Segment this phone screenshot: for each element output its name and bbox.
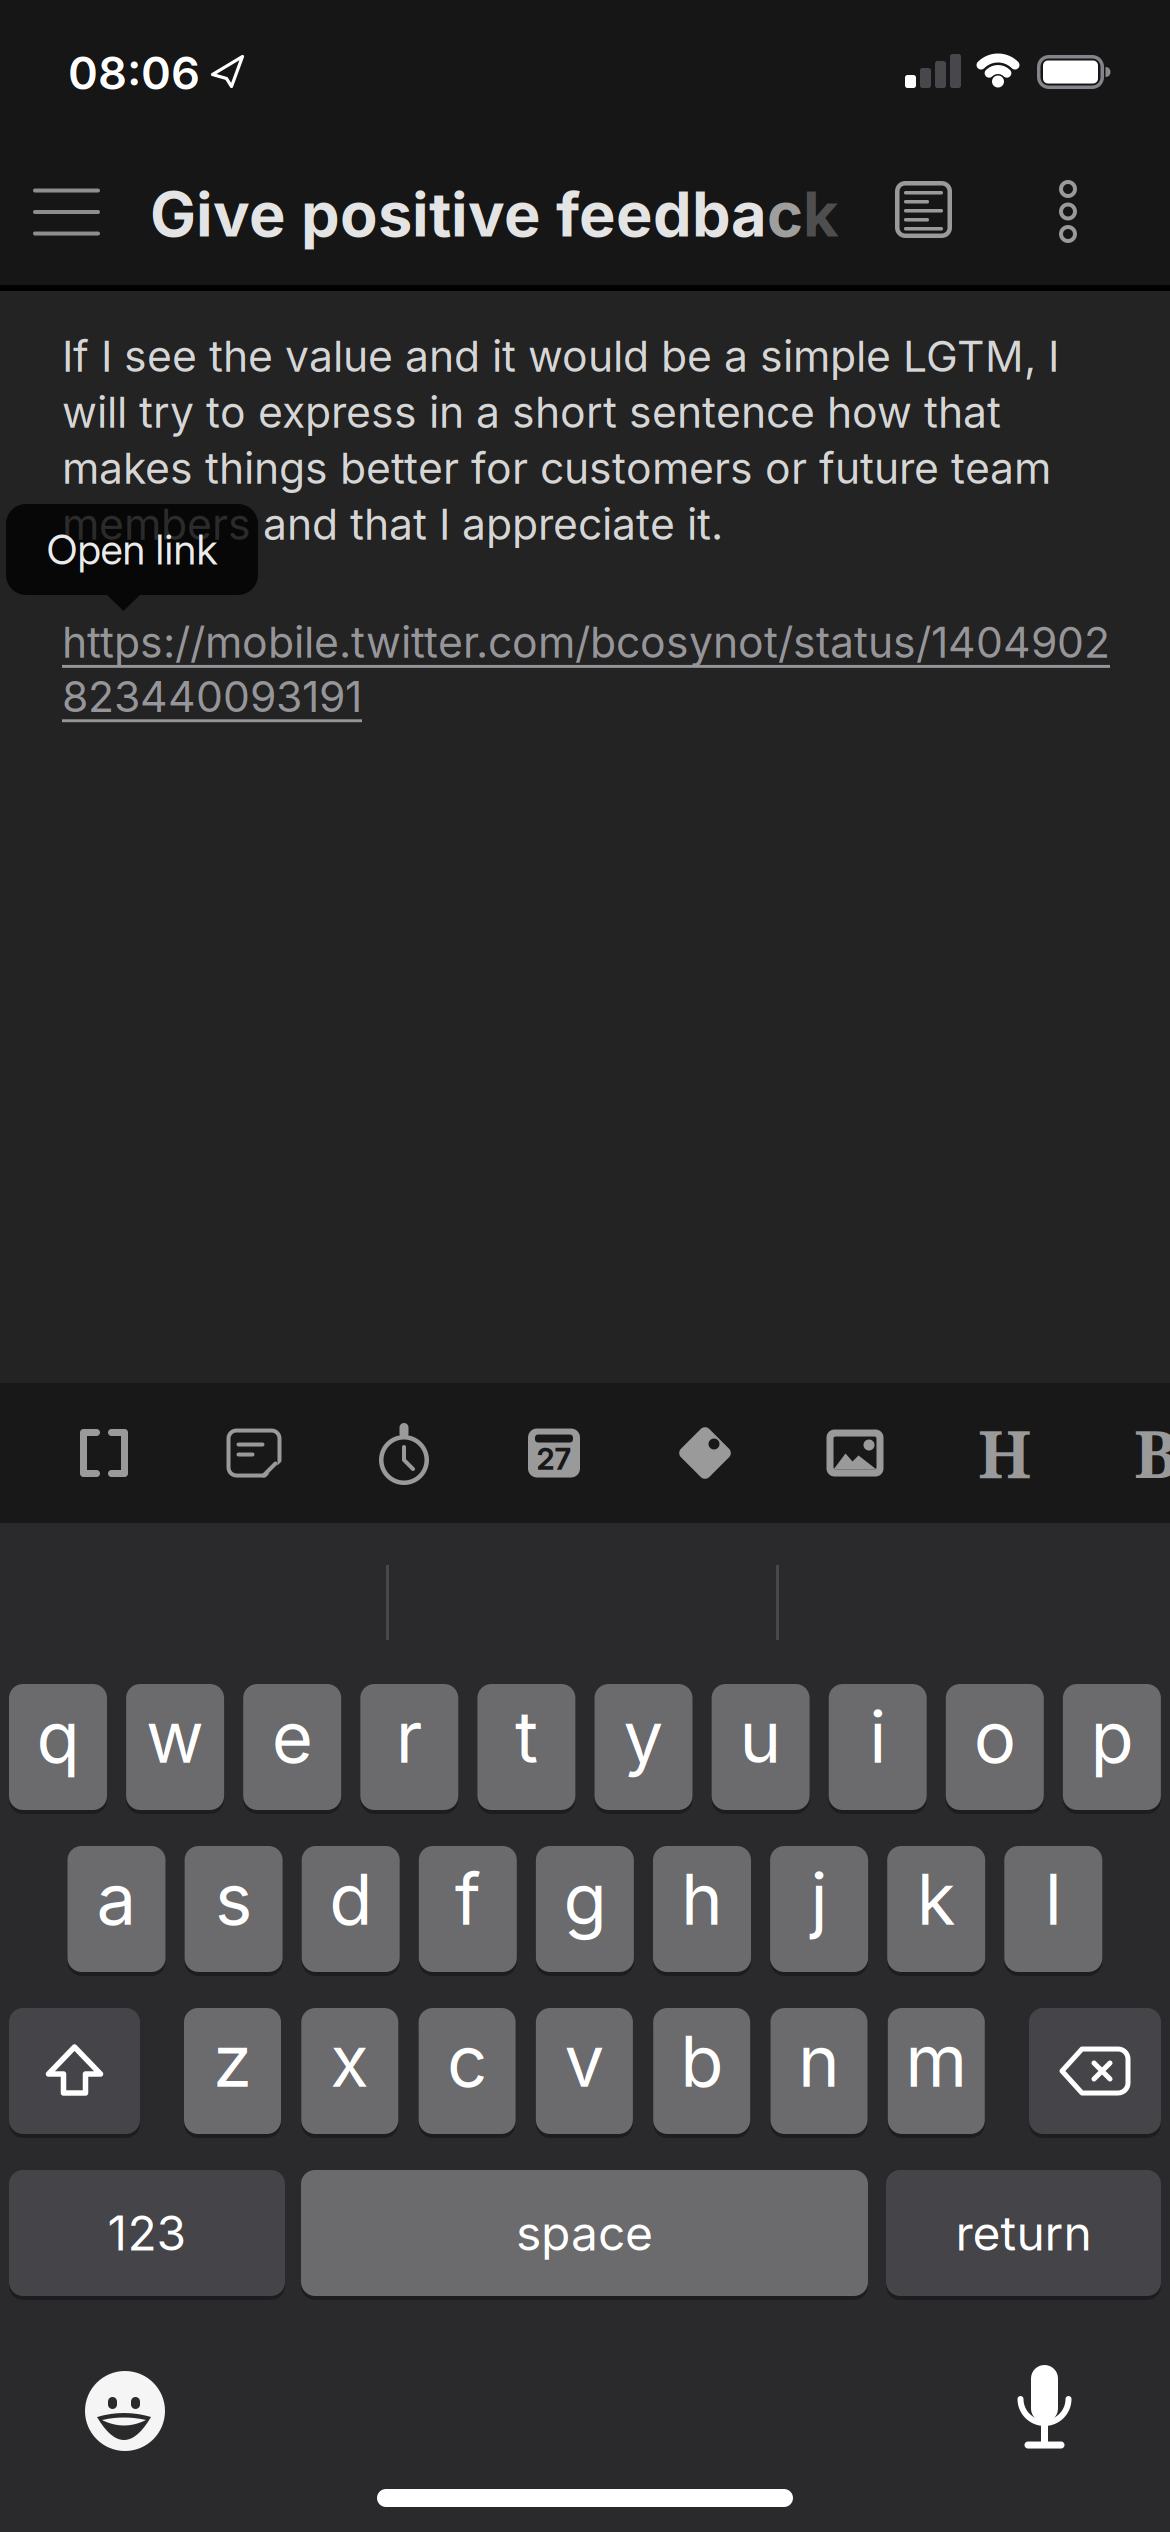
button[interactable]: s bbox=[185, 1844, 283, 1974]
staticText: i bbox=[869, 1695, 886, 1779]
button[interactable]: k bbox=[887, 1844, 985, 1974]
button[interactable]: m bbox=[888, 2006, 985, 2136]
staticText: return bbox=[955, 2205, 1091, 2261]
staticText: 123 bbox=[107, 2205, 186, 2261]
button[interactable]: Dictation bbox=[1017, 2365, 1072, 2451]
button[interactable]: g bbox=[536, 1844, 634, 1974]
staticText: e bbox=[272, 1695, 313, 1779]
button[interactable]: Insert note bbox=[226, 1428, 281, 1477]
button[interactable]: x bbox=[301, 2006, 398, 2136]
staticText: r bbox=[396, 1695, 423, 1779]
staticText: f bbox=[455, 1857, 481, 1941]
button[interactable]: v bbox=[536, 2006, 633, 2136]
staticText: s bbox=[215, 1857, 252, 1941]
staticText: y bbox=[623, 1695, 663, 1779]
staticText: If I see the value and it would be a sim… bbox=[62, 331, 1059, 381]
button[interactable]: r bbox=[360, 1682, 458, 1812]
button[interactable]: j bbox=[770, 1844, 868, 1974]
button[interactable]: a bbox=[67, 1844, 165, 1974]
button[interactable]: f bbox=[419, 1844, 517, 1974]
button[interactable]: space bbox=[301, 2168, 868, 2298]
staticText: n bbox=[798, 2019, 840, 2103]
button[interactable]: Heading bbox=[978, 1408, 1032, 1497]
staticText: q bbox=[36, 1695, 79, 1779]
staticText: space bbox=[516, 2205, 653, 2261]
staticText: h bbox=[681, 1857, 723, 1941]
staticText: k bbox=[917, 1857, 956, 1941]
staticText: k bbox=[803, 178, 839, 250]
staticText: makes things better for customers or fut… bbox=[62, 443, 1051, 493]
staticText: t bbox=[515, 1695, 538, 1779]
staticText: m bbox=[905, 2019, 967, 2103]
staticText: a bbox=[96, 1857, 136, 1941]
button[interactable]: Insert link bbox=[79, 1428, 128, 1477]
staticText: g bbox=[563, 1857, 606, 1941]
button[interactable]: Add tag bbox=[676, 1424, 734, 1482]
button[interactable]: y bbox=[594, 1682, 692, 1812]
button[interactable]: return bbox=[886, 2168, 1161, 2298]
button[interactable]: 123 bbox=[9, 2168, 285, 2298]
button[interactable]: Outline bbox=[895, 181, 952, 238]
button[interactable]: h bbox=[653, 1844, 751, 1974]
button[interactable]: b bbox=[653, 2006, 750, 2136]
staticText: 27 bbox=[536, 1442, 571, 1476]
staticText: c bbox=[767, 178, 803, 250]
staticText: 08:06 bbox=[68, 46, 200, 100]
staticText: d bbox=[329, 1857, 372, 1941]
button[interactable]: z bbox=[184, 2006, 281, 2136]
staticText: c bbox=[447, 2019, 487, 2103]
staticText: members and that I appreciate it. bbox=[62, 499, 723, 549]
staticText: j bbox=[811, 1857, 828, 1941]
button[interactable]: o bbox=[946, 1682, 1044, 1812]
button[interactable]: Insert image bbox=[826, 1429, 883, 1476]
staticText: 823440093191 bbox=[62, 671, 362, 722]
button[interactable]: Delete bbox=[1029, 2006, 1161, 2136]
staticText: H bbox=[978, 1408, 1032, 1497]
button[interactable]: d bbox=[302, 1844, 400, 1974]
button[interactable]: l bbox=[1004, 1844, 1102, 1974]
staticText: b bbox=[680, 2019, 723, 2103]
button[interactable]: c bbox=[419, 2006, 516, 2136]
button[interactable]: https://mobile.twitter.com/bcosynot/stat… bbox=[62, 617, 1110, 722]
staticText: x bbox=[330, 2019, 369, 2103]
staticText: u bbox=[740, 1695, 782, 1779]
button[interactable]: More options bbox=[1059, 180, 1077, 243]
staticText: B bbox=[1134, 1408, 1170, 1497]
staticText: https://mobile.twitter.com/bcosynot/stat… bbox=[62, 617, 1110, 667]
button[interactable]: e bbox=[243, 1682, 341, 1812]
button[interactable]: Insert date bbox=[528, 1428, 580, 1477]
button[interactable]: u bbox=[712, 1682, 810, 1812]
button[interactable]: w bbox=[126, 1682, 224, 1812]
button[interactable]: t bbox=[477, 1682, 575, 1812]
staticText: Open link bbox=[46, 525, 217, 574]
staticText: v bbox=[564, 2019, 604, 2103]
button[interactable]: q bbox=[9, 1682, 107, 1812]
button[interactable]: i bbox=[829, 1682, 927, 1812]
button[interactable]: Insert time bbox=[376, 1423, 432, 1485]
staticText: w bbox=[146, 1695, 204, 1779]
button[interactable]: p bbox=[1063, 1682, 1161, 1812]
button[interactable]: n bbox=[770, 2006, 867, 2136]
button[interactable]: Open link bbox=[6, 504, 258, 611]
staticText: z bbox=[213, 2019, 252, 2103]
button[interactable]: Shift bbox=[9, 2006, 140, 2136]
staticText: o bbox=[974, 1695, 1016, 1779]
staticText: Give positive feedba bbox=[150, 178, 767, 250]
button[interactable]: Emoji bbox=[85, 2371, 165, 2451]
button[interactable]: Menu bbox=[33, 188, 100, 235]
staticText: l bbox=[1045, 1857, 1062, 1941]
button[interactable]: Bold bbox=[1134, 1408, 1170, 1497]
staticText: will try to express in a short sentence … bbox=[62, 387, 1001, 437]
staticText: p bbox=[1090, 1695, 1133, 1779]
